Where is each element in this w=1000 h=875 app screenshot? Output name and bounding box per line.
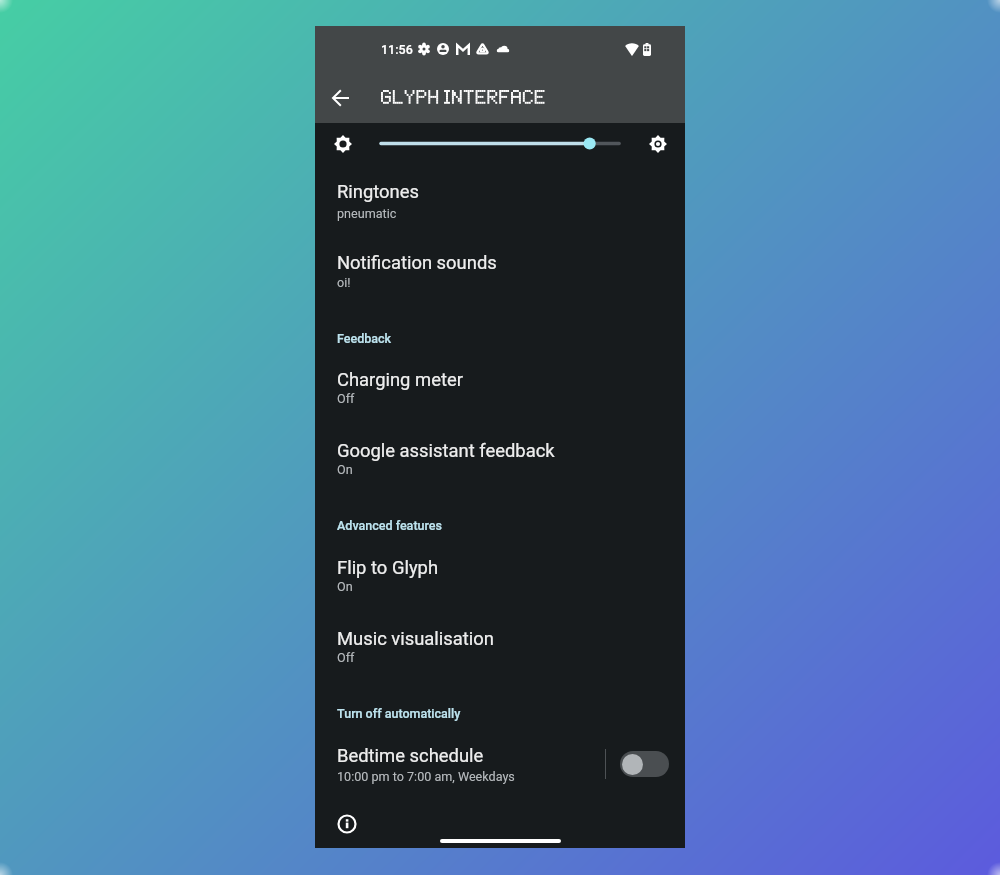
button[interactable]: Information (335, 812, 359, 836)
staticText: Turn off automatically (337, 706, 461, 721)
button[interactable]: Brightness down (325, 126, 360, 161)
button[interactable]: Charging meter (315, 357, 685, 409)
button[interactable]: Back (319, 77, 361, 119)
staticText: Music visualisation (337, 628, 494, 650)
staticText: Google assistant feedback (337, 440, 555, 462)
staticText: Off (337, 391, 355, 406)
staticText: 10:00 pm to 7:00 am, Weekdays (337, 769, 515, 784)
staticText: Bedtime schedule (337, 745, 484, 767)
button[interactable]: Ringtones (315, 169, 685, 221)
button[interactable]: Bedtime schedule toggle (620, 751, 669, 777)
button[interactable]: Flip to Glyph (315, 545, 685, 597)
staticText: oi! (337, 275, 351, 290)
button[interactable]: Brightness up (640, 126, 675, 161)
staticText: Advanced features (337, 518, 442, 533)
staticText: On (337, 579, 353, 594)
staticText: pneumatic (337, 206, 397, 221)
staticText: Feedback (337, 331, 392, 346)
button[interactable]: Notification sounds (315, 240, 685, 292)
staticText: 11:56 (381, 42, 413, 57)
staticText: Flip to Glyph (337, 557, 439, 579)
staticText: Off (337, 650, 355, 665)
button[interactable]: Google assistant feedback (315, 428, 685, 480)
staticText: Ringtones (337, 181, 420, 203)
staticText: Notification sounds (337, 252, 497, 274)
button[interactable]: Music visualisation (315, 616, 685, 668)
button[interactable]: Brightness slider (375, 129, 625, 158)
staticText: On (337, 462, 353, 477)
button[interactable]: Bedtime schedule (315, 733, 600, 785)
staticText: Charging meter (337, 369, 463, 391)
